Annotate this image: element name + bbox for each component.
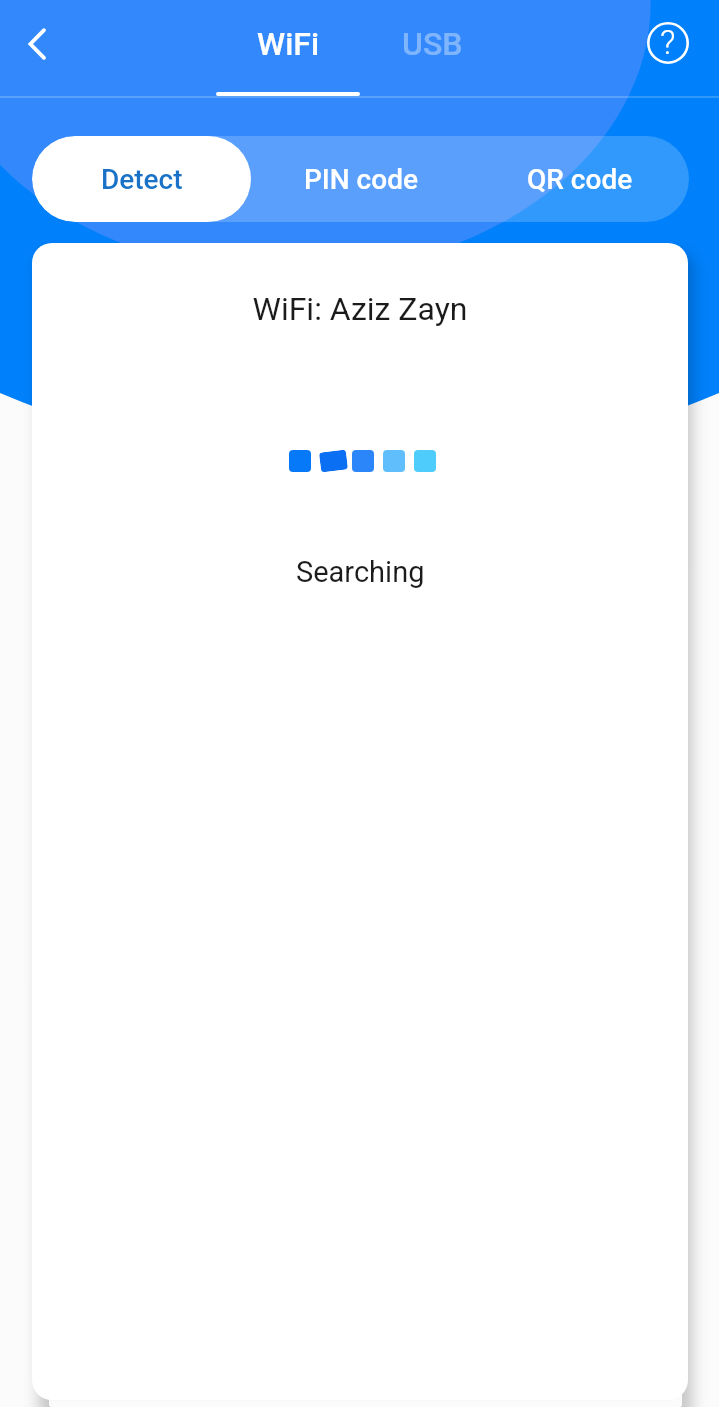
staticText: USB	[402, 25, 463, 63]
button[interactable]: QR code	[470, 136, 689, 222]
staticText: WiFi: Aziz Zayn	[252, 290, 468, 328]
staticText: WiFi	[257, 25, 320, 63]
button[interactable]: PIN code	[251, 136, 470, 222]
staticText: Detect	[101, 163, 183, 196]
button[interactable]: Help	[640, 15, 696, 71]
staticText: Searching	[296, 555, 425, 589]
staticText: PIN code	[304, 163, 418, 196]
button[interactable]: WiFi	[216, 0, 360, 97]
staticText: ?	[660, 22, 676, 62]
button[interactable]: Detect	[32, 136, 251, 222]
staticText: QR code	[527, 163, 633, 196]
button[interactable]: Back	[12, 16, 68, 72]
button[interactable]: USB	[360, 0, 504, 97]
